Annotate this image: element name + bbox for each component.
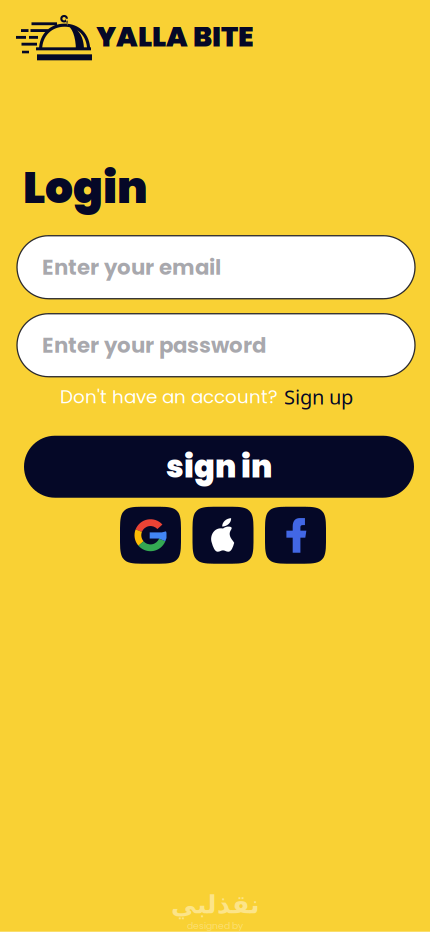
- button[interactable]: Sign up: [278, 383, 353, 410]
- button[interactable]: Sign in with Apple: [192, 507, 253, 564]
- staticText: YALLA BITE: [96, 17, 254, 56]
- button[interactable]: Enter your password: [17, 314, 415, 377]
- staticText: Enter your password: [42, 330, 266, 360]
- staticText: sign in: [166, 445, 272, 488]
- button[interactable]: Sign in with Facebook: [265, 507, 326, 564]
- button[interactable]: sign in: [24, 436, 414, 498]
- staticText: designed by: [187, 919, 243, 932]
- button[interactable]: Enter your email: [17, 236, 415, 299]
- staticText: Enter your email: [42, 252, 221, 282]
- staticText: Login: [23, 157, 148, 218]
- staticText: Don't have an account?: [60, 384, 278, 410]
- staticText: نقذلبي: [170, 890, 259, 919]
- staticText: Sign up: [284, 383, 353, 410]
- button[interactable]: Sign in with Google: [120, 507, 181, 564]
